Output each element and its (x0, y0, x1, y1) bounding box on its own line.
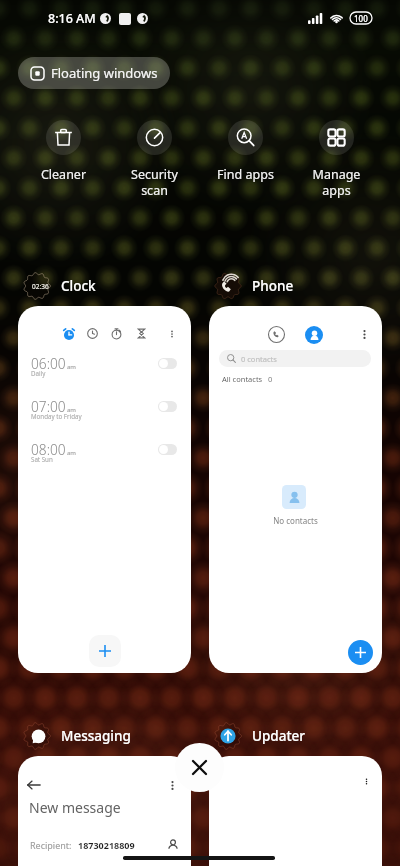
button[interactable]: Dialer (268, 326, 285, 343)
button[interactable]: Find apps (200, 120, 291, 183)
button[interactable]: Security scan (109, 120, 200, 198)
staticText: am (67, 449, 76, 457)
button[interactable]: 0 contacts (219, 350, 371, 367)
button[interactable]: Contacts (305, 326, 323, 344)
button[interactable]: Pick contact (167, 839, 179, 851)
button[interactable]: Close all (175, 743, 224, 792)
button[interactable]: Toggle alarm (158, 444, 177, 455)
staticText: No contacts (209, 515, 382, 526)
staticText: 18730218809 (78, 839, 135, 851)
button[interactable]: 07:00 (18, 397, 191, 423)
button[interactable]: 06:00 (18, 354, 191, 380)
button[interactable]: Toggle alarm (158, 358, 177, 369)
staticText: am (67, 363, 76, 371)
button[interactable]: Toggle alarm (158, 401, 177, 412)
button[interactable]: 08:00 (18, 440, 191, 466)
staticText: 07:00 (31, 397, 66, 416)
staticText: Daily (31, 369, 46, 377)
button[interactable]: Alarm (63, 328, 75, 340)
button[interactable]: World clock (87, 328, 98, 339)
button[interactable]: Alarm (18, 306, 191, 673)
staticText: 100 (354, 13, 368, 24)
staticText: New message (29, 798, 121, 817)
button[interactable]: Manage apps (291, 120, 382, 198)
staticText: Phone (252, 277, 294, 295)
button[interactable]: Back (18, 756, 191, 866)
staticText: Recipient: (30, 839, 72, 851)
button[interactable]: 02:36 (18, 272, 191, 300)
button[interactable]: Stopwatch (111, 328, 122, 339)
button[interactable]: More options (209, 756, 382, 866)
staticText: 02:36 (32, 282, 49, 291)
staticText: Monday to Friday (31, 412, 82, 420)
staticText: Sat Sun (31, 455, 53, 463)
staticText: am (67, 406, 76, 414)
staticText: Cleaner (18, 166, 109, 183)
staticText: Security scan (109, 166, 200, 198)
button[interactable]: Floating windows (18, 57, 170, 89)
staticText: All contacts (222, 374, 263, 384)
staticText: 08:00 (31, 440, 66, 459)
staticText: Clock (61, 277, 96, 295)
staticText: Find apps (200, 166, 291, 183)
button[interactable]: More options (167, 329, 177, 339)
button[interactable]: More options (166, 779, 179, 792)
staticText: Updater (252, 727, 306, 745)
button[interactable]: Phone (209, 272, 382, 300)
button[interactable]: More options (358, 328, 371, 341)
staticText: 06:00 (31, 354, 66, 373)
button[interactable]: Add contact (348, 640, 373, 665)
button[interactable]: Back (27, 778, 41, 792)
button[interactable]: Dialer (209, 306, 382, 673)
button[interactable]: Messaging (18, 722, 191, 750)
button[interactable]: Cleaner (18, 120, 109, 183)
button[interactable]: Updater (209, 722, 382, 750)
staticText: 0 (268, 374, 273, 384)
staticText: 8:16 AM (48, 10, 96, 27)
staticText: Messaging (61, 727, 131, 745)
staticText: 0 contacts (241, 354, 277, 364)
staticText: Manage apps (291, 166, 382, 198)
button[interactable]: Add alarm (89, 635, 121, 667)
staticText: Floating windows (51, 64, 158, 82)
button[interactable]: More options (362, 777, 371, 786)
button[interactable]: Timer (136, 328, 147, 339)
